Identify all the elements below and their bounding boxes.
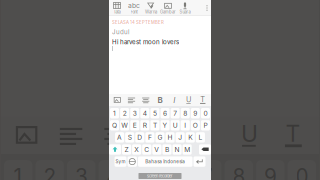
button[interactable]: Shift bbox=[109, 158, 121, 169]
button[interactable]: Q bbox=[110, 134, 119, 144]
button[interactable]: 1 bbox=[110, 122, 119, 132]
button[interactable]: Italic bbox=[168, 95, 180, 104]
button[interactable]: H bbox=[166, 132, 175, 143]
button[interactable]: Suara bbox=[176, 14, 193, 30]
button[interactable]: abc bbox=[125, 14, 142, 30]
button[interactable]: 9 bbox=[191, 108, 200, 118]
button[interactable]: Insert image bbox=[111, 95, 123, 104]
button[interactable]: L bbox=[196, 132, 205, 143]
button[interactable]: Italic bbox=[168, 109, 180, 118]
button[interactable]: H bbox=[166, 146, 175, 157]
button[interactable]: Gambar bbox=[159, 14, 176, 30]
button[interactable]: Align left bbox=[125, 109, 137, 118]
button[interactable]: Align centre bbox=[140, 95, 152, 104]
button[interactable]: B bbox=[162, 144, 171, 155]
button[interactable]: Text colour bbox=[197, 95, 209, 104]
button[interactable]: More options bbox=[201, 14, 212, 30]
button[interactable]: 3 bbox=[130, 122, 139, 132]
button[interactable]: Suara bbox=[176, 0, 193, 16]
button[interactable]: 2 bbox=[120, 108, 129, 118]
button[interactable]: Text colour bbox=[197, 109, 209, 118]
button[interactable]: 1 bbox=[110, 108, 119, 118]
button[interactable]: R bbox=[140, 134, 149, 144]
button[interactable]: F bbox=[145, 146, 154, 157]
button[interactable]: D bbox=[135, 146, 144, 157]
button[interactable]: Z bbox=[122, 144, 131, 155]
button[interactable]: T bbox=[150, 120, 159, 130]
button[interactable]: P bbox=[201, 120, 210, 130]
button[interactable]: W bbox=[120, 134, 129, 144]
button[interactable]: W bbox=[120, 120, 129, 130]
button[interactable]: E bbox=[130, 134, 139, 144]
button[interactable]: Underline bbox=[182, 109, 194, 118]
button[interactable]: U bbox=[171, 134, 180, 144]
button[interactable]: M bbox=[183, 158, 192, 169]
button[interactable]: O bbox=[191, 120, 200, 130]
button[interactable]: Insert image bbox=[111, 109, 123, 118]
button[interactable]: Bahasa Indonesia bbox=[138, 156, 192, 167]
button[interactable]: C bbox=[142, 158, 151, 169]
button[interactable]: E bbox=[130, 120, 139, 130]
button[interactable]: Underline bbox=[182, 95, 194, 104]
button[interactable]: 8 bbox=[181, 122, 190, 132]
button[interactable]: Delete bbox=[199, 144, 211, 155]
button[interactable]: Bold bbox=[154, 109, 166, 118]
button[interactable]: 9 bbox=[191, 122, 200, 132]
button[interactable]: 7 bbox=[171, 122, 180, 132]
button[interactable]: Tata bbox=[108, 0, 125, 16]
button[interactable]: Shift bbox=[109, 144, 121, 155]
button[interactable]: Warna bbox=[142, 14, 159, 30]
button[interactable]: G bbox=[155, 132, 165, 143]
button[interactable]: Sym bbox=[114, 156, 126, 167]
button[interactable]: N bbox=[172, 144, 182, 155]
button[interactable]: A bbox=[115, 146, 124, 157]
button[interactable]: Delete bbox=[199, 158, 211, 169]
button[interactable]: S bbox=[125, 146, 134, 157]
button[interactable]: Gambar bbox=[159, 0, 176, 16]
button[interactable]: S bbox=[125, 132, 134, 143]
button[interactable]: 0 bbox=[201, 108, 210, 118]
button[interactable]: Align centre bbox=[140, 109, 152, 118]
button[interactable]: 6 bbox=[160, 122, 170, 132]
button[interactable]: 8 bbox=[181, 108, 190, 118]
button[interactable]: X bbox=[132, 144, 141, 155]
button[interactable]: 3 bbox=[130, 108, 139, 118]
button[interactable]: P bbox=[201, 134, 210, 144]
button[interactable]: V bbox=[152, 144, 161, 155]
button[interactable]: Bold bbox=[154, 95, 166, 104]
button[interactable]: Tata bbox=[108, 14, 125, 30]
button[interactable]: Return bbox=[193, 156, 205, 167]
button[interactable]: Y bbox=[160, 134, 170, 144]
button[interactable]: G bbox=[155, 146, 165, 157]
button[interactable]: 6 bbox=[160, 108, 170, 118]
button[interactable]: K bbox=[186, 146, 195, 157]
button[interactable]: Bahasa Indonesia bbox=[138, 170, 192, 180]
button[interactable]: I bbox=[181, 120, 190, 130]
button[interactable]: Z bbox=[122, 158, 131, 169]
button[interactable]: U bbox=[171, 120, 180, 130]
button[interactable]: 4 bbox=[140, 122, 149, 132]
button[interactable]: 5 bbox=[150, 108, 159, 118]
button[interactable]: A bbox=[115, 132, 124, 143]
button[interactable]: O bbox=[191, 134, 200, 144]
button[interactable]: 5 bbox=[150, 122, 159, 132]
button[interactable]: Change language bbox=[127, 156, 137, 167]
button[interactable]: C bbox=[142, 144, 151, 155]
button[interactable]: D bbox=[135, 132, 144, 143]
button[interactable]: M bbox=[183, 144, 192, 155]
button[interactable]: R bbox=[140, 120, 149, 130]
button[interactable]: I bbox=[181, 134, 190, 144]
button[interactable]: Align left bbox=[125, 95, 137, 104]
button[interactable]: X bbox=[132, 158, 141, 169]
button[interactable]: More options bbox=[201, 0, 212, 16]
button[interactable]: 0 bbox=[201, 122, 210, 132]
button[interactable]: J bbox=[176, 132, 185, 143]
button[interactable]: V bbox=[152, 158, 161, 169]
button[interactable]: Q bbox=[110, 120, 119, 130]
button[interactable]: Y bbox=[160, 120, 170, 130]
button[interactable]: 4 bbox=[140, 108, 149, 118]
button[interactable]: Warna bbox=[142, 0, 159, 16]
